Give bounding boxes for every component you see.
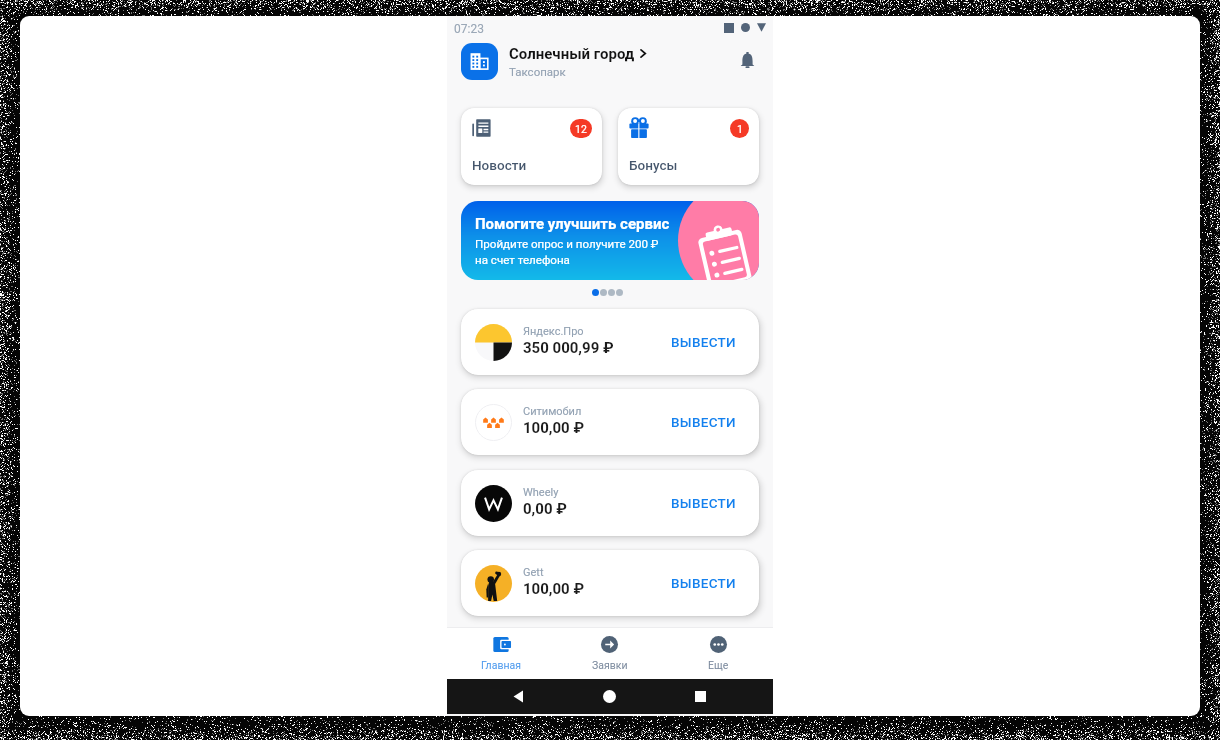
staticText: 07:23	[454, 22, 484, 36]
button[interactable]: ВЫВЕСТИ	[667, 568, 740, 598]
staticText: ВЫВЕСТИ	[671, 495, 736, 511]
button[interactable]: Помогите улучшить сервис	[461, 201, 759, 280]
button[interactable]: 12	[461, 108, 602, 185]
staticText: Солнечный город	[509, 45, 635, 62]
button[interactable]: Gett	[461, 550, 759, 616]
button[interactable]: Home	[603, 690, 616, 703]
button[interactable]: Notifications	[733, 47, 761, 75]
button[interactable]: ВЫВЕСТИ	[667, 488, 740, 518]
button[interactable]: Back	[511, 689, 526, 704]
staticText: Gett	[523, 566, 544, 579]
staticText: Еще	[708, 659, 729, 671]
button[interactable]: ВЫВЕСТИ	[667, 407, 740, 437]
staticText: Бонусы	[629, 157, 678, 173]
staticText: Яндекс.Про	[523, 325, 584, 338]
button[interactable]: Еще	[664, 628, 773, 679]
button[interactable]: Главная	[447, 628, 555, 679]
staticText: Помогите улучшить сервис	[475, 215, 670, 233]
staticText: ВЫВЕСТИ	[671, 414, 736, 430]
button[interactable]: Заявки	[555, 628, 664, 679]
staticText: 1	[737, 123, 743, 135]
button[interactable]: Wheely	[461, 470, 759, 536]
staticText: Заявки	[592, 659, 628, 671]
staticText: Таксопарк	[509, 65, 566, 78]
staticText: 0,00 ₽	[523, 500, 567, 518]
staticText: Wheely	[523, 486, 559, 499]
staticText: 350 000,99 ₽	[523, 339, 614, 357]
button[interactable]: ВЫВЕСТИ	[667, 327, 740, 357]
staticText: ВЫВЕСТИ	[671, 334, 736, 350]
staticText: Ситимобил	[523, 405, 582, 418]
button[interactable]: 1	[618, 108, 759, 185]
button[interactable]: Taxi park	[461, 43, 498, 80]
button[interactable]: Яндекс.Про	[461, 309, 759, 375]
staticText: ВЫВЕСТИ	[671, 575, 736, 591]
staticText: 12	[575, 123, 587, 135]
staticText: Новости	[472, 157, 527, 173]
staticText: 100,00 ₽	[523, 580, 585, 598]
button[interactable]: Ситимобил	[461, 389, 759, 455]
staticText: Пройдите опрос и получите 200 ₽ на счет …	[475, 237, 659, 267]
staticText: 100,00 ₽	[523, 419, 585, 437]
staticText: Главная	[481, 659, 521, 671]
